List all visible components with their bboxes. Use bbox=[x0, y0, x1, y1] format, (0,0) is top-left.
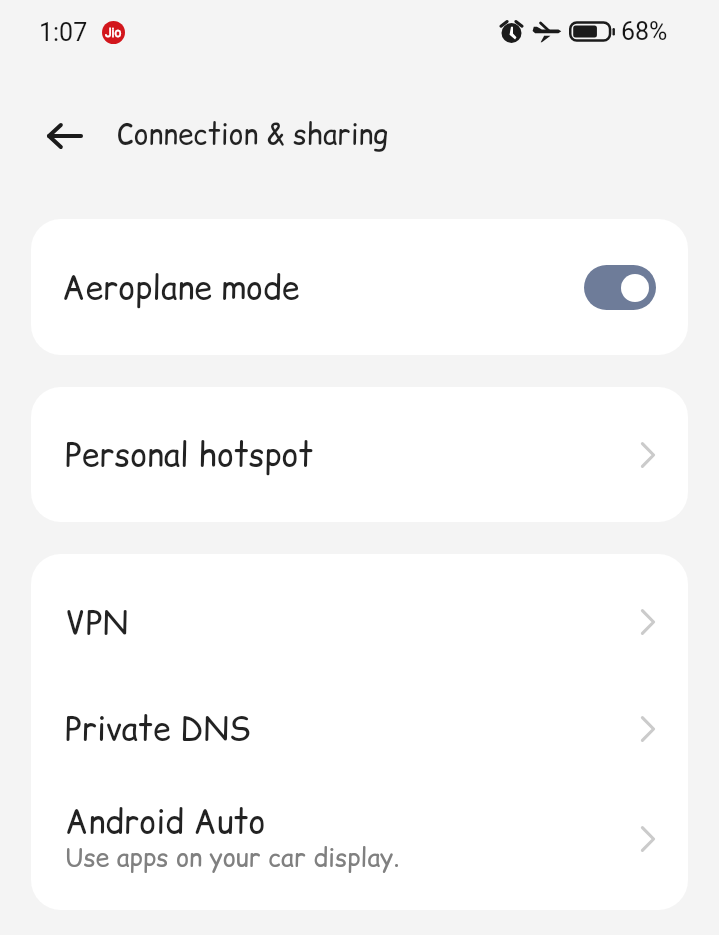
staticText: Use apps on your car display. bbox=[65, 840, 400, 875]
other: Open bbox=[633, 440, 663, 470]
other: Open bbox=[633, 607, 663, 637]
button[interactable]: Personal hotspot bbox=[31, 387, 688, 522]
button[interactable]: VPN bbox=[31, 554, 688, 690]
staticText: 1:07 bbox=[39, 18, 88, 47]
staticText: Aeroplane mode bbox=[62, 265, 300, 310]
button[interactable]: Aeroplane mode bbox=[31, 219, 688, 355]
button[interactable]: Aeroplane mode toggle bbox=[584, 265, 656, 310]
staticText: Android Auto bbox=[65, 799, 266, 844]
staticText: Jio bbox=[105, 26, 122, 40]
staticText: VPN bbox=[65, 600, 128, 645]
staticText: Private DNS bbox=[65, 706, 251, 751]
staticText: 68% bbox=[621, 17, 668, 46]
other: Open bbox=[633, 714, 663, 744]
button[interactable]: Back bbox=[39, 110, 91, 162]
button[interactable]: Private DNS bbox=[31, 690, 688, 767]
button[interactable]: Android Auto bbox=[31, 767, 688, 910]
other: Open bbox=[633, 824, 663, 854]
staticText: Connection & sharing bbox=[117, 114, 389, 153]
staticText: Personal hotspot bbox=[65, 432, 314, 477]
